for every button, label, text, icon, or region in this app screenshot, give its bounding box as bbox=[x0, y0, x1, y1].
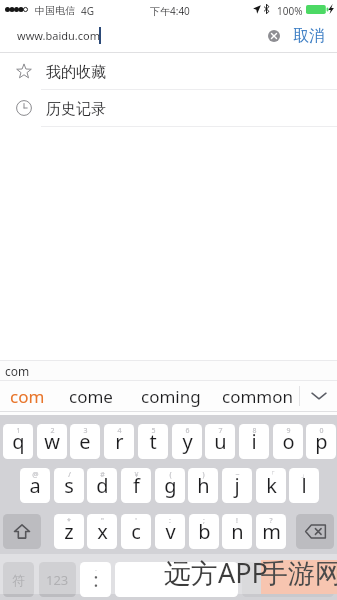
staticText: n bbox=[231, 518, 244, 545]
staticText: 7 bbox=[218, 426, 223, 436]
button[interactable]: 9 bbox=[273, 424, 303, 459]
staticText: / bbox=[68, 470, 71, 480]
staticText: 我的收藏 bbox=[46, 63, 106, 82]
staticText: o bbox=[282, 428, 295, 455]
staticText: s bbox=[64, 472, 74, 499]
staticText: k bbox=[266, 472, 277, 499]
staticText: r bbox=[115, 428, 124, 455]
staticText: : bbox=[93, 566, 99, 593]
staticText: 」 bbox=[301, 470, 308, 479]
staticText: i bbox=[251, 428, 257, 455]
button[interactable]: 6 bbox=[172, 424, 202, 459]
button[interactable]: 7 bbox=[205, 424, 235, 459]
staticText: 8 bbox=[252, 426, 257, 436]
staticText: 远方APP bbox=[164, 554, 268, 591]
staticText: m bbox=[262, 518, 281, 545]
staticText: ! bbox=[236, 516, 238, 526]
staticText: u bbox=[214, 428, 227, 455]
button[interactable]: ¥ bbox=[121, 468, 151, 503]
staticText: f bbox=[133, 472, 140, 499]
staticText: 历史记录 bbox=[46, 100, 106, 119]
button[interactable]: com bbox=[0, 381, 54, 411]
button[interactable]: ? bbox=[256, 514, 286, 549]
button[interactable]: 3 bbox=[70, 424, 100, 459]
staticText: 123 bbox=[46, 571, 69, 589]
staticText: * bbox=[67, 516, 71, 526]
staticText: ¥ bbox=[134, 470, 139, 480]
staticText: b bbox=[198, 518, 211, 545]
staticText: ( bbox=[169, 470, 172, 480]
button[interactable]: " bbox=[87, 514, 117, 549]
staticText: w bbox=[44, 428, 60, 455]
staticText: : bbox=[169, 516, 171, 526]
staticText: q bbox=[12, 428, 25, 455]
button[interactable]: ' bbox=[121, 514, 151, 549]
button[interactable]: 」 bbox=[289, 468, 319, 503]
button[interactable]: Shift bbox=[3, 514, 41, 549]
button[interactable]: 123 bbox=[39, 562, 76, 597]
button[interactable]: # bbox=[87, 468, 117, 503]
staticText: 9 bbox=[286, 426, 291, 436]
staticText: p bbox=[315, 428, 328, 455]
button[interactable]: come bbox=[54, 381, 127, 411]
staticText: www.baidu.com bbox=[17, 28, 100, 43]
button[interactable]: : bbox=[155, 514, 185, 549]
button[interactable]: ! bbox=[222, 514, 252, 549]
staticText: common bbox=[222, 385, 294, 408]
staticText: z bbox=[64, 518, 74, 545]
button[interactable]: 「 bbox=[256, 468, 286, 503]
staticText: 0 bbox=[319, 426, 324, 436]
staticText: y bbox=[182, 428, 193, 455]
button[interactable]: * bbox=[54, 514, 84, 549]
staticText: coming bbox=[141, 385, 201, 408]
staticText: ? bbox=[269, 516, 273, 526]
button[interactable]: 5 bbox=[138, 424, 168, 459]
button[interactable]: coming bbox=[127, 381, 214, 411]
button[interactable]: / bbox=[54, 468, 84, 503]
button[interactable] bbox=[115, 562, 238, 597]
button[interactable]: 4 bbox=[104, 424, 134, 459]
button[interactable]: 符 bbox=[3, 562, 34, 597]
staticText: # bbox=[100, 470, 105, 480]
staticText: ; bbox=[203, 516, 205, 526]
button[interactable]: 我的收藏 bbox=[0, 53, 337, 89]
staticText: l bbox=[301, 472, 307, 499]
button[interactable]: @ bbox=[20, 468, 50, 503]
staticText: come bbox=[69, 385, 113, 408]
staticText: com bbox=[10, 385, 45, 408]
staticText: @ bbox=[32, 470, 39, 480]
staticText: 5 bbox=[151, 426, 156, 436]
staticText: a bbox=[29, 472, 41, 499]
staticText: h bbox=[197, 472, 210, 499]
button[interactable]: 取消 bbox=[293, 19, 325, 52]
staticText: 下午4:40 bbox=[150, 4, 190, 18]
staticText: 中国电信 bbox=[35, 4, 75, 17]
button[interactable]: ; bbox=[189, 514, 219, 549]
button[interactable]: common bbox=[214, 381, 301, 411]
staticText: 2 bbox=[50, 426, 55, 436]
staticText: 1 bbox=[16, 426, 21, 436]
button[interactable]: ~ bbox=[222, 468, 252, 503]
staticText: 4 bbox=[117, 426, 122, 436]
button[interactable]: Return bbox=[242, 562, 334, 597]
staticText: 100% bbox=[277, 4, 303, 18]
staticText: t bbox=[149, 428, 157, 455]
button[interactable]: . bbox=[80, 562, 111, 597]
staticText: " bbox=[101, 516, 104, 526]
staticText: e bbox=[79, 428, 91, 455]
staticText: c bbox=[131, 518, 141, 545]
button[interactable]: 历史记录 bbox=[0, 90, 337, 126]
button[interactable]: Clear bbox=[262, 24, 286, 48]
button[interactable]: 0 bbox=[306, 424, 336, 459]
staticText: ' bbox=[135, 516, 137, 526]
button[interactable]: ) bbox=[188, 468, 218, 503]
button[interactable]: 1 bbox=[3, 424, 33, 459]
button[interactable]: Backspace bbox=[296, 514, 334, 549]
button[interactable]: ( bbox=[155, 468, 185, 503]
button[interactable]: 2 bbox=[37, 424, 67, 459]
button[interactable]: More suggestions bbox=[300, 381, 337, 411]
staticText: 6 bbox=[185, 426, 190, 436]
staticText: 3 bbox=[83, 426, 88, 436]
staticText: g bbox=[164, 472, 177, 499]
button[interactable]: 8 bbox=[239, 424, 269, 459]
